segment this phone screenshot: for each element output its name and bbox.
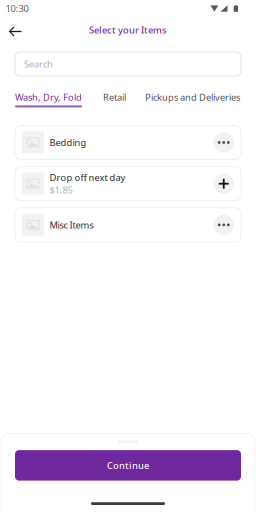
staticText: Wash, Dry, Fold (15, 91, 82, 103)
staticText: Retail (103, 91, 126, 103)
button[interactable]: Continue (15, 450, 241, 481)
button[interactable]: Bedding (15, 125, 241, 160)
button[interactable]: Drop off next day (15, 167, 241, 201)
staticText: Misc Items (49, 219, 93, 231)
staticText: Drop off next day (49, 171, 125, 184)
button[interactable]: Wash, Dry, Fold (15, 91, 82, 107)
button[interactable]: Misc Items (15, 208, 241, 242)
button[interactable]: Pickups and Deliveries (126, 91, 240, 107)
staticText: Bedding (49, 136, 86, 149)
button[interactable]: Back (0, 18, 30, 42)
staticText: Search (24, 58, 53, 70)
staticText: Select your Items (89, 24, 167, 36)
button[interactable]: Retail (82, 91, 126, 107)
staticText: Continue (107, 459, 149, 472)
staticText: Pickups and Deliveries (145, 91, 240, 103)
staticText: $1.85 (49, 184, 72, 196)
staticText: 10:30 (5, 2, 28, 15)
